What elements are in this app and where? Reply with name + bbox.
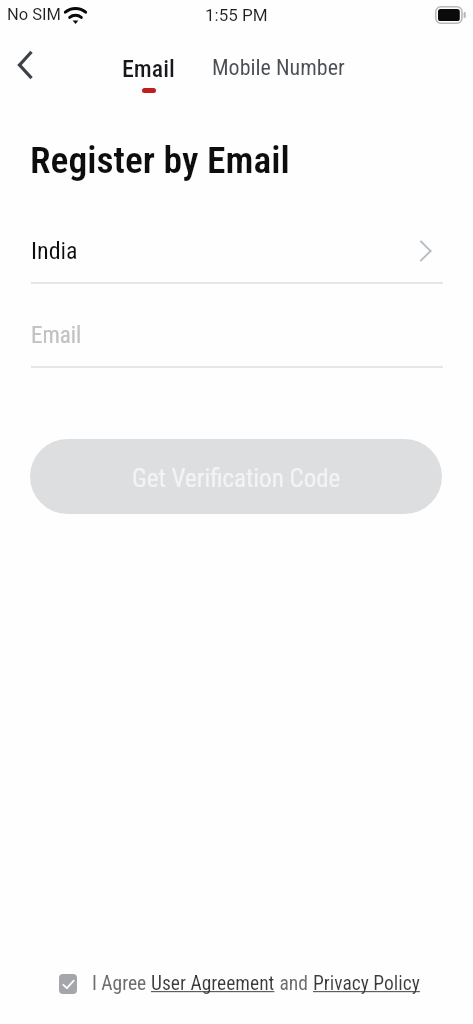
button[interactable]: Email [118, 55, 178, 100]
staticText: 1:55 PM [205, 5, 268, 25]
button[interactable]: I agree checkbox [59, 974, 77, 994]
button[interactable]: India [0, 224, 473, 278]
button[interactable]: Mobile Number [203, 55, 353, 95]
staticText: Email [31, 322, 82, 349]
staticText: and [275, 972, 313, 995]
button[interactable]: Get Verification Code [30, 439, 442, 514]
button[interactable]: Email [0, 308, 473, 362]
staticText: India [31, 237, 78, 265]
button[interactable]: Privacy Policy [313, 972, 420, 995]
staticText: No SIM [7, 5, 61, 24]
staticText: Mobile Number [212, 55, 345, 81]
staticText: I Agree [92, 972, 151, 995]
staticText: Register by Email [30, 138, 290, 182]
button[interactable]: Back [4, 43, 48, 87]
button[interactable]: User Agreement [151, 972, 275, 995]
staticText: Get Verification Code [132, 464, 341, 493]
staticText: Email [122, 55, 175, 83]
